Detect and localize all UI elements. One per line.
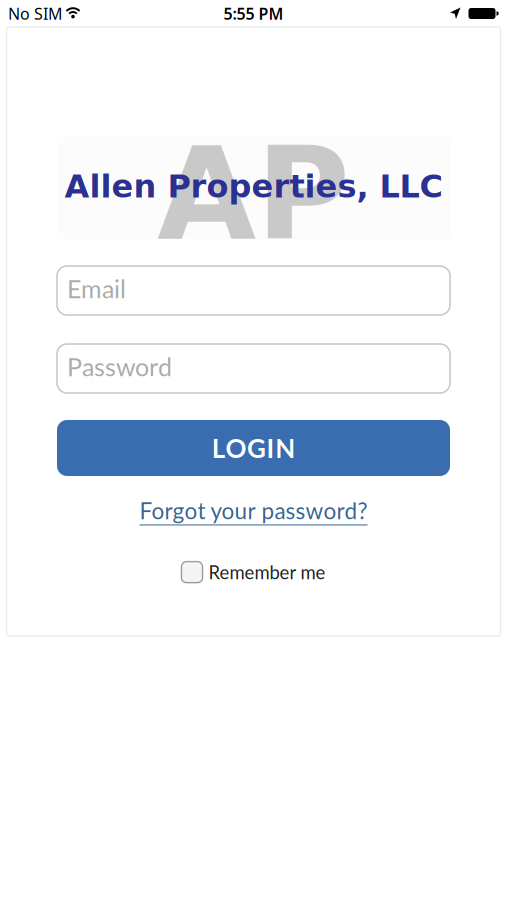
staticText: Remember me xyxy=(208,561,325,583)
staticText: 5:55 PM xyxy=(223,3,283,24)
staticText: AP xyxy=(157,120,350,269)
staticText: Email xyxy=(67,273,126,303)
staticText: No SIM xyxy=(8,3,63,24)
staticText: Allen Properties, LLC xyxy=(64,168,442,205)
staticText: Password xyxy=(67,351,172,381)
button[interactable]: Remember me xyxy=(181,561,325,583)
button[interactable]: Password xyxy=(57,344,450,393)
button[interactable]: Email xyxy=(57,266,450,315)
button[interactable]: LOGIN xyxy=(57,420,450,476)
button[interactable]: Forgot your password? xyxy=(139,497,367,524)
staticText: LOGIN xyxy=(212,432,295,464)
staticText: Forgot your password? xyxy=(139,497,367,524)
